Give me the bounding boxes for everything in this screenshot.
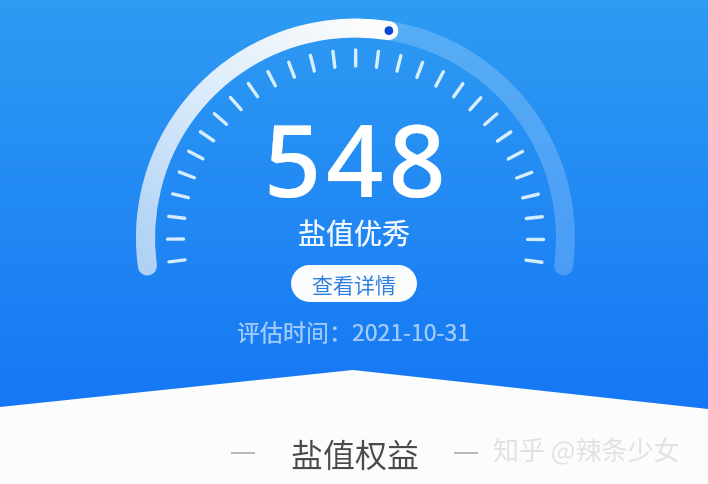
button[interactable]: 查看详情 [291,265,417,302]
staticText: 知乎 @辣条少女 [493,430,680,468]
staticText: 盐值权益 [291,430,420,476]
staticText: 盐值优秀 [298,212,411,253]
staticText: 评估时间：2021-10-31 [237,314,471,347]
staticText: 548 [264,90,451,226]
staticText: 查看详情 [312,269,396,299]
